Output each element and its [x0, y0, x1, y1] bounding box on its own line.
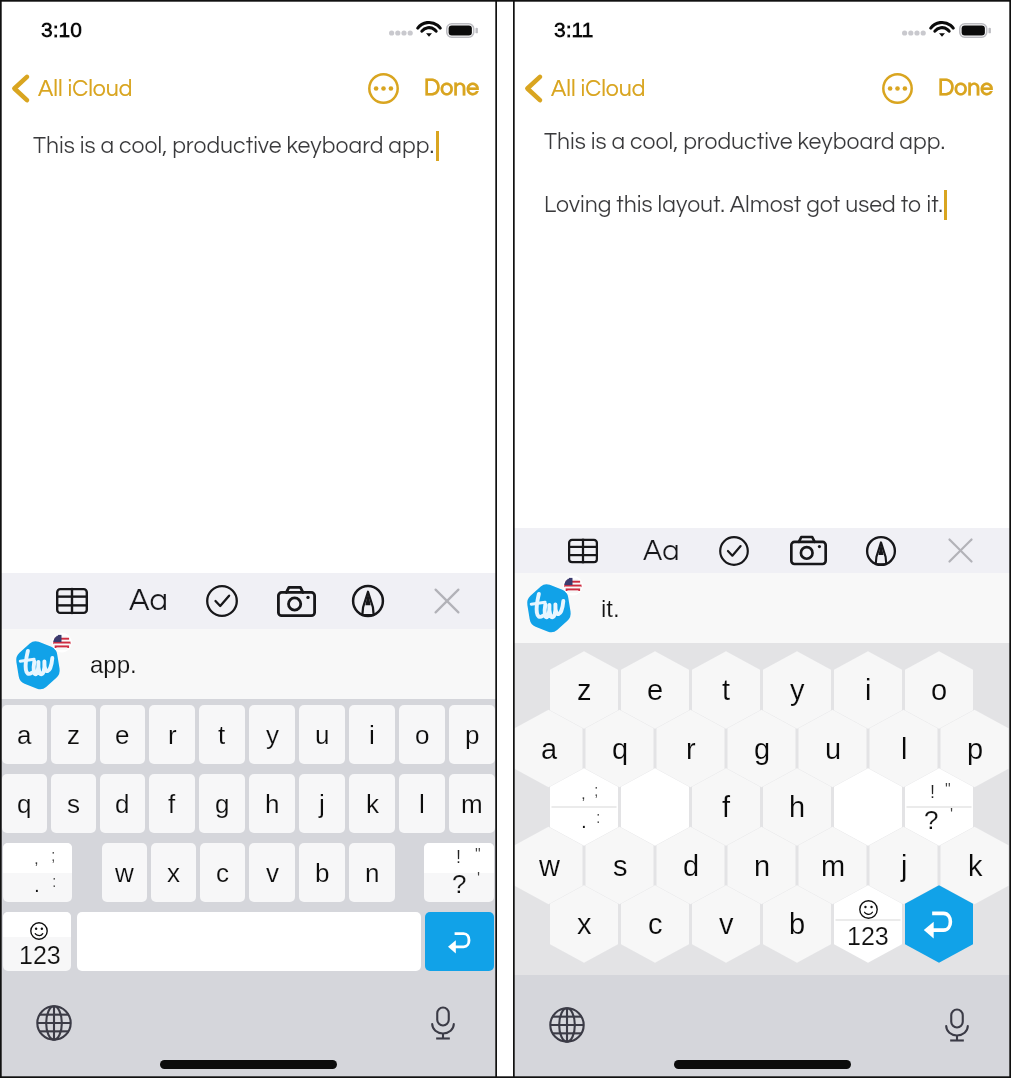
staticText: ": [475, 846, 481, 864]
button[interactable]: Done: [418, 70, 485, 106]
button[interactable]: d: [100, 774, 145, 833]
staticText: t: [722, 674, 731, 706]
button[interactable]: Dictate: [420, 1000, 466, 1046]
button[interactable]: l: [869, 720, 939, 778]
button[interactable]: h: [249, 774, 295, 833]
button[interactable]: Return: [904, 895, 974, 953]
button[interactable]: Table: [48, 577, 96, 625]
button[interactable]: g: [727, 720, 797, 778]
button[interactable]: Change keyboard: [544, 1002, 590, 1048]
button[interactable]: c: [620, 895, 690, 953]
button[interactable]: v: [691, 895, 761, 953]
button[interactable]: Table: [560, 528, 606, 573]
button[interactable]: h: [762, 778, 832, 836]
button[interactable]: Question mark: [424, 843, 494, 902]
button[interactable]: q: [585, 720, 655, 778]
button[interactable]: Key: [620, 778, 690, 836]
button[interactable]: j: [869, 837, 939, 895]
button[interactable]: Camera: [785, 528, 831, 573]
button[interactable]: Camera: [272, 577, 320, 625]
button[interactable]: f: [149, 774, 195, 833]
button[interactable]: All iCloud: [519, 70, 652, 107]
button[interactable]: t: [691, 661, 761, 719]
button[interactable]: k: [940, 837, 1010, 895]
button[interactable]: w: [514, 837, 584, 895]
button[interactable]: b: [762, 895, 832, 953]
button[interactable]: c: [200, 843, 245, 902]
button[interactable]: u: [299, 705, 345, 764]
button[interactable]: v: [249, 843, 295, 902]
button[interactable]: s: [585, 837, 655, 895]
staticText: !: [930, 782, 936, 802]
button[interactable]: m: [798, 837, 868, 895]
button[interactable]: n: [349, 843, 395, 902]
staticText: b: [789, 908, 806, 940]
button[interactable]: a: [514, 720, 584, 778]
button[interactable]: r: [149, 705, 195, 764]
button[interactable]: Change keyboard: [31, 1000, 77, 1046]
staticText: app.: [90, 651, 137, 678]
staticText: ?: [924, 805, 939, 834]
button[interactable]: p: [449, 705, 495, 764]
button[interactable]: i: [349, 705, 395, 764]
button[interactable]: x: [151, 843, 196, 902]
button[interactable]: g: [199, 774, 245, 833]
button[interactable]: Punctuation: [3, 843, 72, 902]
button[interactable]: Dictate: [934, 1002, 980, 1048]
button[interactable]: e: [100, 705, 145, 764]
staticText: ': [477, 870, 481, 888]
staticText: .: [34, 873, 40, 896]
staticText: z: [577, 674, 592, 706]
button[interactable]: q: [2, 774, 47, 833]
staticText: ,: [581, 784, 586, 803]
button[interactable]: d: [656, 837, 726, 895]
button[interactable]: More options: [361, 66, 405, 110]
staticText: q: [17, 789, 32, 818]
button[interactable]: k: [349, 774, 395, 833]
button[interactable]: Checklist: [711, 528, 757, 573]
button[interactable]: u: [798, 720, 868, 778]
button[interactable]: Done: [932, 70, 999, 106]
button[interactable]: o: [904, 661, 974, 719]
button[interactable]: Numbers and emoji: [3, 912, 71, 971]
button[interactable]: Aa: [638, 528, 684, 573]
button[interactable]: n: [727, 837, 797, 895]
button[interactable]: y: [762, 661, 832, 719]
button[interactable]: Close keyboard: [937, 528, 983, 573]
button[interactable]: z: [549, 661, 619, 719]
button[interactable]: y: [249, 705, 295, 764]
button[interactable]: w: [102, 843, 147, 902]
button[interactable]: Markup: [858, 528, 904, 573]
button[interactable]: o: [399, 705, 445, 764]
button[interactable]: s: [51, 774, 96, 833]
button[interactable]: Question mark: [904, 778, 974, 836]
button[interactable]: Key: [833, 778, 903, 836]
button[interactable]: e: [620, 661, 690, 719]
button[interactable]: p: [940, 720, 1010, 778]
button[interactable]: a: [2, 705, 47, 764]
button[interactable]: f: [691, 778, 761, 836]
staticText: m: [821, 850, 846, 882]
button[interactable]: Aa: [124, 577, 172, 625]
button[interactable]: Numbers and emoji: [833, 895, 903, 953]
button[interactable]: Return: [425, 912, 494, 971]
button[interactable]: Close keyboard: [423, 577, 471, 625]
button[interactable]: j: [299, 774, 345, 833]
button[interactable]: m: [449, 774, 495, 833]
button[interactable]: l: [399, 774, 445, 833]
button[interactable]: r: [656, 720, 726, 778]
button[interactable]: More options: [875, 66, 919, 110]
button[interactable]: i: [833, 661, 903, 719]
button[interactable]: Markup: [344, 577, 392, 625]
button[interactable]: Punctuation: [549, 778, 619, 836]
staticText: 3:10: [41, 18, 82, 41]
button[interactable]: Checklist: [198, 577, 246, 625]
button[interactable]: b: [299, 843, 345, 902]
button[interactable]: t: [199, 705, 245, 764]
staticText: 123: [19, 941, 61, 969]
button[interactable]: x: [549, 895, 619, 953]
button[interactable]: All iCloud: [6, 70, 139, 107]
button[interactable]: z: [51, 705, 96, 764]
staticText: k: [968, 850, 983, 882]
